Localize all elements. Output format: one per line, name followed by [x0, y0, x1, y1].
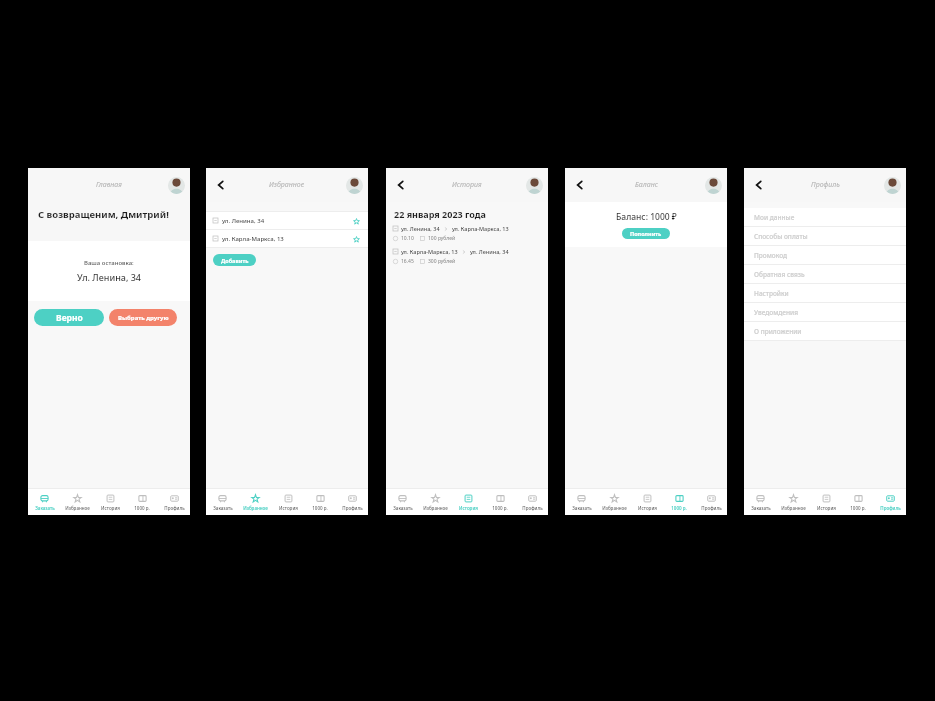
- button[interactable]: Добавить: [213, 254, 256, 266]
- button[interactable]: История: [452, 489, 484, 515]
- staticText: Заказать: [213, 505, 233, 511]
- staticText: История: [459, 505, 478, 511]
- staticText: 16.45: [401, 258, 414, 265]
- button[interactable]: Избранное: [419, 489, 452, 515]
- button[interactable]: 1000 р.: [484, 489, 516, 515]
- staticText: Промокод: [754, 251, 788, 260]
- staticText: 1000 р.: [492, 505, 508, 511]
- button[interactable]: 1000 р.: [304, 489, 336, 515]
- staticText: Профиль: [701, 505, 722, 511]
- staticText: Избранное: [781, 505, 806, 511]
- staticText: Верно: [56, 312, 83, 324]
- button[interactable]: Промокод: [744, 246, 906, 265]
- staticText: 1000 р.: [850, 505, 866, 511]
- button[interactable]: Back: [571, 176, 589, 194]
- staticText: О приложении: [754, 327, 802, 336]
- button[interactable]: Избранное: [777, 489, 810, 515]
- button[interactable]: ул. Карла-Маркса, 13: [213, 230, 361, 247]
- button[interactable]: Favorite: [351, 216, 361, 226]
- button[interactable]: Заказать: [206, 489, 239, 515]
- staticText: Заказать: [572, 505, 592, 511]
- staticText: Избранное: [243, 505, 268, 511]
- button[interactable]: Избранное: [239, 489, 272, 515]
- staticText: Способы оплаты: [754, 232, 808, 241]
- staticText: 22 января 2023 года: [394, 208, 486, 220]
- button[interactable]: Профиль: [336, 489, 368, 515]
- button[interactable]: Профиль: [516, 489, 548, 515]
- staticText: История: [279, 505, 298, 511]
- staticText: История: [817, 505, 836, 511]
- button[interactable]: Профиль: [158, 489, 190, 515]
- staticText: Добавить: [221, 257, 249, 264]
- button[interactable]: Profile photo: [346, 177, 363, 194]
- staticText: Выбрать другую: [118, 314, 169, 322]
- staticText: 300 рублей: [428, 258, 456, 265]
- button[interactable]: Пополнить: [622, 228, 670, 239]
- staticText: История: [452, 180, 482, 190]
- button[interactable]: Уведомдения: [744, 303, 906, 322]
- button[interactable]: История: [810, 489, 842, 515]
- button[interactable]: Выбрать другую: [109, 309, 177, 326]
- button[interactable]: ул. Карла-Маркса, 13: [393, 248, 541, 265]
- button[interactable]: Favorite: [351, 234, 361, 244]
- button[interactable]: 1000 р.: [842, 489, 874, 515]
- button[interactable]: 1000 р.: [663, 489, 695, 515]
- staticText: Профиль: [342, 505, 363, 511]
- staticText: 10.10: [401, 235, 414, 242]
- staticText: ул. Карла-Маркса, 13: [452, 225, 509, 232]
- button[interactable]: История: [94, 489, 126, 515]
- staticText: Мои данные: [754, 213, 795, 222]
- button[interactable]: Профиль: [695, 489, 727, 515]
- button[interactable]: Избранное: [61, 489, 94, 515]
- staticText: Профиль: [522, 505, 543, 511]
- staticText: Заказать: [35, 505, 55, 511]
- button[interactable]: ул. Ленина, 34: [393, 225, 541, 242]
- button[interactable]: О приложении: [744, 322, 906, 341]
- staticText: 1000 р.: [312, 505, 328, 511]
- button[interactable]: Back: [750, 176, 768, 194]
- staticText: История: [101, 505, 120, 511]
- button[interactable]: История: [631, 489, 663, 515]
- staticText: История: [638, 505, 657, 511]
- button[interactable]: Back: [392, 176, 410, 194]
- staticText: ул. Карла-Маркса, 13: [222, 235, 284, 243]
- staticText: Избранное: [602, 505, 627, 511]
- staticText: 1000 р.: [134, 505, 150, 511]
- button[interactable]: Настройки: [744, 284, 906, 303]
- staticText: Избранное: [269, 180, 305, 190]
- button[interactable]: Профиль: [874, 489, 906, 515]
- button[interactable]: Profile photo: [526, 177, 543, 194]
- staticText: 100 рублей: [428, 235, 456, 242]
- button[interactable]: Обратная связь: [744, 265, 906, 284]
- staticText: ул. Ленина, 34: [401, 225, 440, 232]
- button[interactable]: Заказать: [386, 489, 419, 515]
- staticText: Ваша остановка:: [84, 259, 134, 267]
- staticText: Заказать: [393, 505, 413, 511]
- button[interactable]: Заказать: [744, 489, 777, 515]
- button[interactable]: Способы оплаты: [744, 227, 906, 246]
- button[interactable]: Profile photo: [884, 177, 901, 194]
- button[interactable]: История: [272, 489, 304, 515]
- button[interactable]: Profile photo: [168, 177, 185, 194]
- button[interactable]: Избранное: [598, 489, 631, 515]
- button[interactable]: Заказать: [565, 489, 598, 515]
- staticText: Профиль: [880, 505, 901, 511]
- button[interactable]: Верно: [34, 309, 104, 326]
- staticText: Профиль: [164, 505, 185, 511]
- button[interactable]: Profile photo: [705, 177, 722, 194]
- button[interactable]: ул. Ленина, 34: [213, 212, 361, 229]
- staticText: Главная: [96, 180, 122, 190]
- button[interactable]: Back: [212, 176, 230, 194]
- staticText: Баланс: [635, 180, 658, 190]
- staticText: Настройки: [754, 289, 789, 298]
- staticText: Обратная связь: [754, 270, 805, 279]
- staticText: ул. Ленина, 34: [470, 248, 509, 255]
- staticText: Профиль: [811, 180, 840, 190]
- staticText: Пополнить: [630, 230, 662, 237]
- staticText: Избранное: [65, 505, 90, 511]
- button[interactable]: Заказать: [28, 489, 61, 515]
- staticText: С возвращеним, Дмитрий!: [38, 208, 190, 221]
- staticText: Ул. Ленина, 34: [77, 271, 141, 283]
- button[interactable]: Мои данные: [744, 208, 906, 227]
- button[interactable]: 1000 р.: [126, 489, 158, 515]
